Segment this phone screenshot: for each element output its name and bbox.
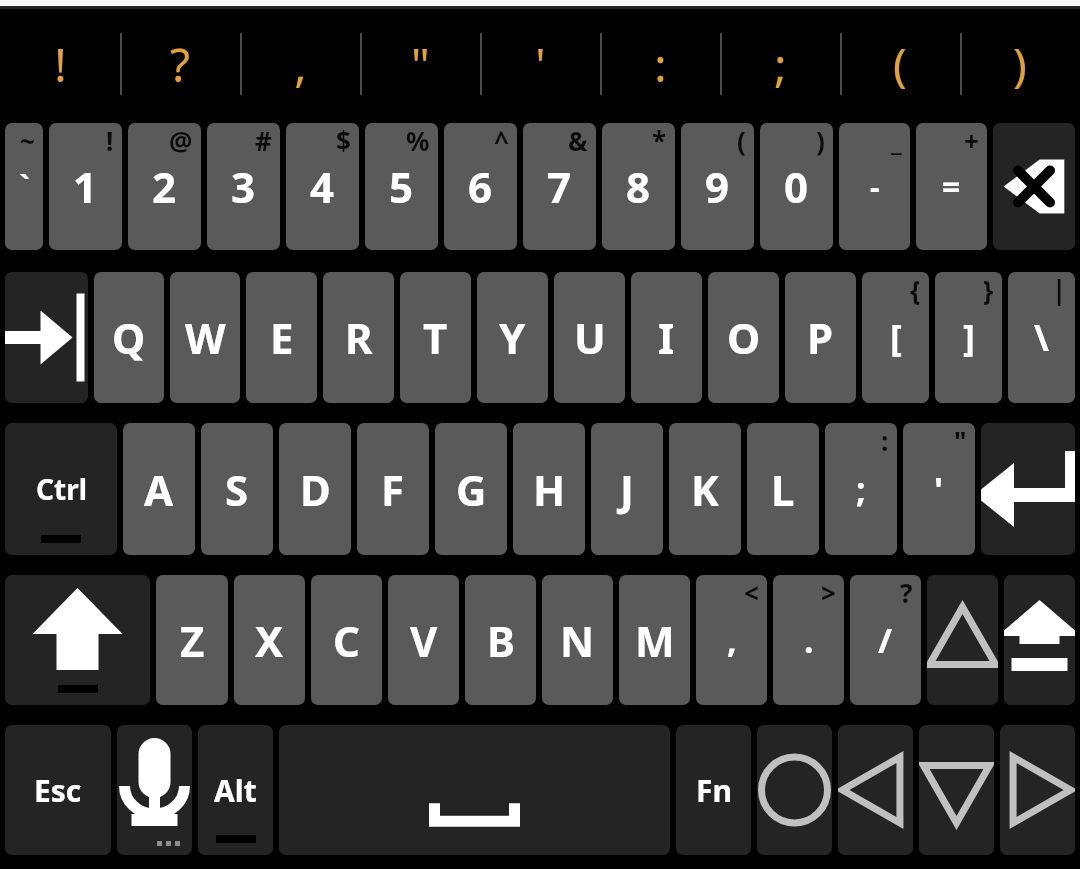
staticText: P: [807, 309, 834, 366]
staticText: @: [169, 123, 193, 158]
button[interactable]: 9: [681, 123, 754, 250]
button[interactable]: Fn: [676, 725, 751, 855]
button[interactable]: T: [400, 272, 471, 403]
staticText: :: [881, 423, 889, 458]
button[interactable]: Tab: [5, 272, 88, 403]
button[interactable]: W: [170, 272, 240, 403]
button[interactable]: .: [773, 575, 844, 705]
button[interactable]: Alt: [198, 725, 273, 855]
button[interactable]: 5: [365, 123, 438, 250]
staticText: M: [635, 612, 675, 669]
button[interactable]: ): [960, 9, 1080, 119]
button[interactable]: Down: [919, 725, 994, 855]
staticText: [: [890, 313, 902, 362]
button[interactable]: X: [234, 575, 305, 705]
button[interactable]: L: [747, 423, 819, 555]
button[interactable]: Z: [156, 575, 228, 705]
button[interactable]: G: [435, 423, 507, 555]
staticText: K: [691, 461, 719, 518]
button[interactable]: !: [0, 9, 120, 119]
button[interactable]: V: [388, 575, 459, 705]
button[interactable]: ?: [120, 9, 240, 119]
button[interactable]: 6: [444, 123, 517, 250]
button[interactable]: Y: [477, 272, 548, 403]
button[interactable]: 8: [602, 123, 675, 250]
button[interactable]: I: [631, 272, 702, 403]
button[interactable]: N: [542, 575, 613, 705]
button[interactable]: ': [480, 9, 600, 119]
button[interactable]: Voice input: [117, 725, 192, 855]
button[interactable]: M: [619, 575, 690, 705]
staticText: 7: [547, 158, 572, 215]
staticText: |: [1052, 272, 1067, 307]
staticText: +: [964, 123, 979, 158]
button[interactable]: Up: [927, 575, 998, 705]
button[interactable]: 3: [207, 123, 280, 250]
button[interactable]: J: [591, 423, 663, 555]
button[interactable]: \: [1008, 272, 1075, 403]
button[interactable]: ,: [240, 9, 360, 119]
staticText: .: [804, 617, 814, 663]
button[interactable]: ': [903, 423, 975, 555]
button[interactable]: D: [279, 423, 351, 555]
button[interactable]: ]: [935, 272, 1002, 403]
button[interactable]: ,: [696, 575, 767, 705]
staticText: ?: [900, 575, 913, 610]
button[interactable]: (: [840, 9, 960, 119]
button[interactable]: R: [323, 272, 394, 403]
staticText: !: [54, 33, 67, 96]
button[interactable]: -: [839, 123, 910, 250]
button[interactable]: :: [600, 9, 720, 119]
button[interactable]: Home: [757, 725, 832, 855]
button[interactable]: Enter: [981, 423, 1075, 555]
button[interactable]: F: [357, 423, 429, 555]
button[interactable]: Space: [279, 725, 670, 855]
staticText: Fn: [696, 770, 732, 811]
staticText: 6: [468, 158, 493, 215]
staticText: &: [568, 123, 588, 158]
button[interactable]: =: [916, 123, 987, 250]
button[interactable]: 7: [523, 123, 596, 250]
button[interactable]: 2: [128, 123, 201, 250]
button[interactable]: E: [246, 272, 317, 403]
staticText: {: [910, 272, 921, 307]
staticText: _: [891, 123, 902, 158]
button[interactable]: ;: [825, 423, 897, 555]
button[interactable]: Caps lock: [1004, 575, 1075, 705]
button[interactable]: Shift: [5, 575, 150, 705]
staticText: E: [270, 309, 294, 366]
staticText: -: [870, 166, 880, 207]
button[interactable]: `: [5, 123, 43, 250]
button[interactable]: [: [862, 272, 929, 403]
button[interactable]: 1: [49, 123, 122, 250]
staticText: *: [652, 123, 667, 158]
button[interactable]: H: [513, 423, 585, 555]
button[interactable]: 0: [760, 123, 833, 250]
button[interactable]: Esc: [5, 725, 111, 855]
staticText: 8: [626, 158, 651, 215]
staticText: Ctrl: [36, 470, 87, 508]
button[interactable]: Q: [94, 272, 164, 403]
button[interactable]: Right: [1000, 725, 1075, 855]
button[interactable]: B: [465, 575, 536, 705]
staticText: /: [878, 617, 893, 663]
staticText: Esc: [34, 770, 82, 811]
staticText: 2: [152, 158, 177, 215]
staticText: U: [574, 309, 606, 366]
button[interactable]: A: [123, 423, 195, 555]
button[interactable]: U: [554, 272, 625, 403]
staticText: Alt: [214, 770, 257, 811]
button[interactable]: ;: [720, 9, 840, 119]
button[interactable]: Left: [838, 725, 913, 855]
button[interactable]: Ctrl: [5, 423, 117, 555]
button[interactable]: K: [669, 423, 741, 555]
staticText: W: [185, 309, 226, 366]
button[interactable]: ": [360, 9, 480, 119]
button[interactable]: Backspace: [993, 123, 1075, 250]
button[interactable]: C: [311, 575, 382, 705]
button[interactable]: P: [785, 272, 856, 403]
button[interactable]: S: [201, 423, 273, 555]
button[interactable]: O: [708, 272, 779, 403]
button[interactable]: /: [850, 575, 921, 705]
button[interactable]: 4: [286, 123, 359, 250]
